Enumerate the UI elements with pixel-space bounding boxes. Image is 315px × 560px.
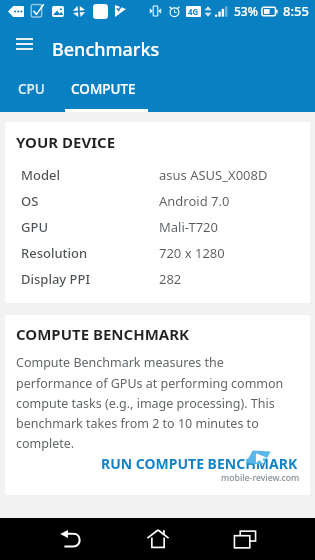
staticText: GPU	[21, 218, 48, 236]
button[interactable]: Back	[49, 518, 92, 560]
button[interactable]: Recent apps	[223, 518, 266, 560]
staticText: 282	[159, 270, 182, 288]
button[interactable]: CPU	[0, 66, 63, 112]
staticText: 4G	[188, 6, 199, 17]
staticText: mobile-review.com	[221, 472, 300, 484]
staticText: RUN COMPUTE BENCHMARK	[101, 454, 298, 473]
button[interactable]: Display PPI	[5, 266, 310, 292]
staticText: Model	[21, 166, 60, 184]
button[interactable]: RUN COMPUTE BENCHMARK	[5, 452, 310, 474]
staticText: 720 x 1280	[159, 244, 225, 262]
staticText: Compute Benchmark measures the performan…	[16, 354, 297, 452]
staticText: Android 7.0	[159, 192, 230, 210]
button[interactable]: GPU	[5, 214, 310, 240]
staticText: COMPUTE BENCHMARK	[16, 324, 189, 344]
button[interactable]: OS	[5, 188, 310, 214]
staticText: Mali-T720	[159, 218, 218, 236]
button[interactable]: Open navigation drawer	[10, 30, 38, 58]
staticText: 53%	[234, 3, 258, 19]
staticText: COMPUTE	[71, 80, 136, 98]
staticText: Display PPI	[21, 270, 91, 288]
staticText: OS	[21, 192, 39, 210]
button[interactable]: Model	[5, 162, 310, 188]
staticText: Benchmarks	[52, 37, 160, 62]
button[interactable]: Resolution	[5, 240, 310, 266]
button[interactable]: COMPUTE	[60, 66, 147, 112]
staticText: 8:55	[283, 2, 309, 20]
staticText: YOUR DEVICE	[16, 132, 116, 152]
staticText: CPU	[18, 80, 45, 98]
staticText: asus ASUS_X008D	[159, 166, 268, 184]
staticText: Resolution	[21, 244, 88, 262]
button[interactable]: Home	[136, 518, 179, 560]
